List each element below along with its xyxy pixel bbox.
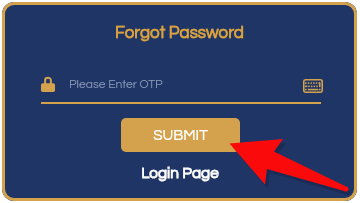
staticText: SUBMIT [153,128,208,144]
button[interactable]: Keyboard [303,79,323,93]
button[interactable]: Login Page [141,165,219,181]
button[interactable]: SUBMIT [121,118,240,152]
staticText: Forgot Password [115,24,244,42]
staticText: Login Page [141,165,219,181]
staticText: Please Enter OTP [69,78,163,90]
